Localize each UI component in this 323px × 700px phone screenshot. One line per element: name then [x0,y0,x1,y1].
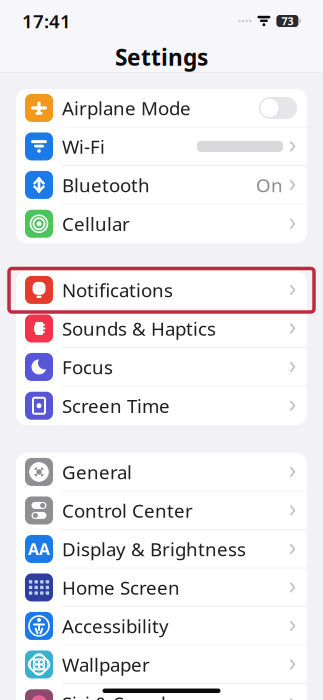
button[interactable]: Home Screen [16,568,307,607]
button[interactable]: Accessibility [16,607,307,645]
staticText: Accessibility [62,614,169,638]
staticText: AA [28,538,50,559]
staticText: Airplane Mode [62,96,191,120]
button[interactable]: Wi-Fi [16,127,307,166]
staticText: Notifications [62,278,173,302]
button[interactable]: Focus [16,348,307,386]
button[interactable]: Airplane Mode [16,89,307,127]
button[interactable]: AA [16,530,307,568]
button[interactable]: Control Center [16,491,307,530]
button[interactable]: General [16,453,307,491]
button[interactable]: Notifications [16,271,307,309]
staticText: Cellular [62,211,130,236]
staticText: Wi-Fi [62,134,105,159]
staticText: 73 [281,14,293,28]
staticText: Screen Time [62,393,170,418]
staticText: Focus [62,355,113,379]
staticText: On [256,173,283,197]
staticText: Home Screen [62,575,180,600]
button[interactable]: Cellular [16,204,307,243]
button[interactable]: Wallpaper [16,645,307,684]
button[interactable]: Siri & Search [16,684,307,700]
staticText: Control Center [62,498,193,523]
button[interactable]: Sounds & Haptics [16,309,307,348]
staticText: Siri & Search [62,691,173,700]
staticText: Bluetooth [62,173,150,197]
staticText: Display & Brightness [62,537,246,561]
staticText: Settings [115,42,208,72]
staticText: General [62,460,132,484]
button[interactable]: Bluetooth [16,166,307,204]
staticText: Wallpaper [62,652,150,677]
staticText: Sounds & Haptics [62,316,216,341]
staticText: 17:41 [22,9,71,33]
button[interactable]: Screen Time [16,386,307,425]
